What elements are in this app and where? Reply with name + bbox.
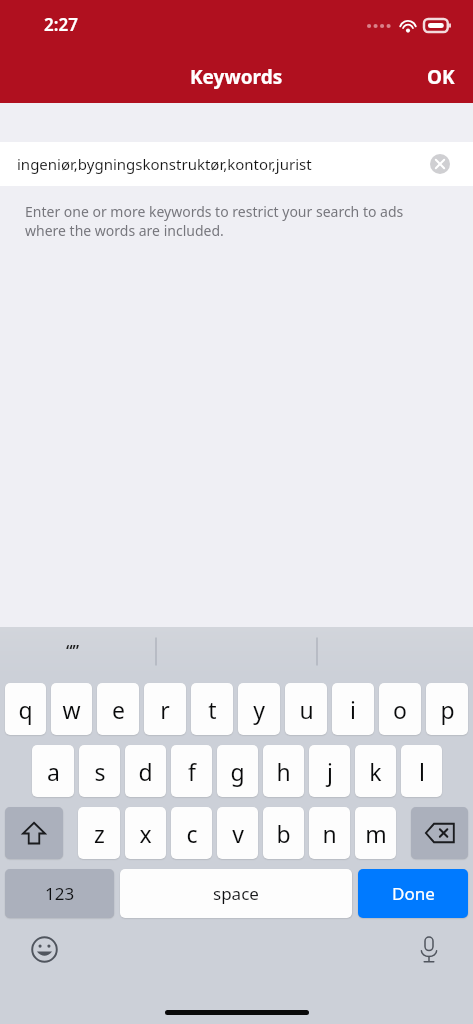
- button[interactable]: e: [97, 683, 139, 735]
- staticText: 2:27: [44, 13, 78, 36]
- button[interactable]: i: [332, 683, 374, 735]
- staticText: m: [365, 818, 387, 849]
- button[interactable]: v: [217, 807, 258, 859]
- button[interactable]: y: [238, 683, 280, 735]
- staticText: c: [186, 818, 198, 849]
- button[interactable]: Emoji keyboard: [26, 932, 62, 966]
- button[interactable]: f: [171, 745, 212, 797]
- staticText: 123: [45, 882, 75, 905]
- button[interactable]: Done: [358, 869, 468, 918]
- staticText: b: [276, 818, 291, 849]
- button[interactable]: Shift: [5, 807, 63, 859]
- staticText: k: [369, 756, 382, 787]
- staticText: e: [112, 694, 125, 725]
- staticText: d: [138, 756, 153, 787]
- button[interactable]: a: [32, 745, 74, 797]
- button[interactable]: Dictation: [411, 932, 447, 966]
- staticText: h: [276, 756, 291, 787]
- button[interactable]: p: [426, 683, 468, 735]
- button[interactable]: space: [120, 869, 352, 918]
- staticText: j: [327, 756, 333, 787]
- button[interactable]: m: [355, 807, 396, 859]
- button[interactable]: d: [125, 745, 166, 797]
- staticText: Keywords: [190, 64, 283, 90]
- button[interactable]: u: [285, 683, 327, 735]
- button[interactable]: s: [79, 745, 120, 797]
- staticText: p: [440, 694, 455, 725]
- button[interactable]: l: [401, 745, 442, 797]
- button[interactable]: k: [355, 745, 396, 797]
- button[interactable]: ingeniør,bygningskonstruktør,kontor,juri…: [0, 142, 473, 186]
- staticText: q: [18, 694, 33, 725]
- button[interactable]: t: [191, 683, 233, 735]
- button[interactable]: r: [144, 683, 186, 735]
- button[interactable]: “”: [66, 640, 80, 662]
- staticText: t: [208, 694, 217, 725]
- button[interactable]: q: [5, 683, 46, 735]
- staticText: y: [253, 694, 265, 725]
- button[interactable]: OK: [409, 54, 473, 100]
- button[interactable]: x: [125, 807, 166, 859]
- staticText: OK: [427, 64, 455, 90]
- button[interactable]: n: [309, 807, 350, 859]
- staticText: space: [213, 882, 259, 905]
- staticText: g: [230, 756, 245, 787]
- button[interactable]: c: [171, 807, 212, 859]
- staticText: s: [94, 756, 106, 787]
- button[interactable]: w: [51, 683, 92, 735]
- staticText: f: [188, 756, 196, 787]
- staticText: Enter one or more keywords to restrict y…: [25, 202, 443, 240]
- staticText: l: [419, 756, 425, 787]
- staticText: Done: [392, 882, 435, 905]
- staticText: x: [139, 818, 152, 849]
- staticText: a: [47, 756, 60, 787]
- staticText: i: [350, 694, 356, 725]
- button[interactable]: o: [379, 683, 421, 735]
- button[interactable]: j: [309, 745, 350, 797]
- staticText: z: [94, 818, 105, 849]
- button[interactable]: b: [263, 807, 304, 859]
- staticText: n: [322, 818, 337, 849]
- staticText: v: [232, 818, 244, 849]
- staticText: o: [393, 694, 407, 725]
- button[interactable]: h: [263, 745, 304, 797]
- staticText: r: [160, 694, 170, 725]
- staticText: u: [299, 694, 314, 725]
- staticText: ingeniør,bygningskonstruktør,kontor,juri…: [17, 154, 312, 174]
- button[interactable]: z: [78, 807, 120, 859]
- staticText: w: [62, 694, 81, 725]
- button[interactable]: Backspace: [411, 807, 468, 859]
- button[interactable]: 123: [5, 869, 114, 918]
- button[interactable]: g: [217, 745, 258, 797]
- button[interactable]: Clear text: [427, 151, 453, 177]
